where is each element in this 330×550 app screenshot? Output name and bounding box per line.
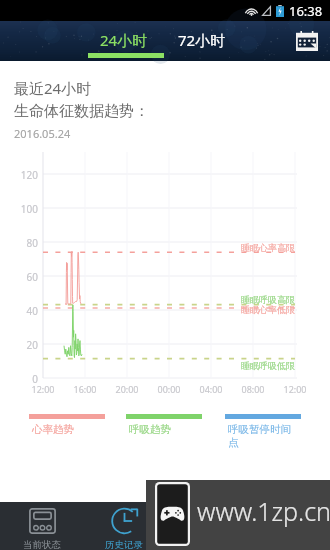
staticText: 健康报告 [165, 539, 247, 550]
staticText: 呼吸趋势 [129, 423, 171, 436]
staticText: 心率趋势 [32, 423, 74, 436]
staticText: 20 [14, 338, 38, 352]
staticText: 08:00 [237, 383, 269, 395]
button[interactable]: 24小时 [100, 30, 148, 50]
staticText: 最近24小时 [14, 78, 92, 98]
staticText: www.1zp.cn [197, 494, 330, 528]
staticText: 60 [14, 270, 38, 284]
button[interactable]: 当前状态 [2, 502, 84, 550]
staticText: 20:00 [111, 383, 143, 395]
staticText: 历史记录 [83, 539, 165, 550]
staticText: 120 [14, 168, 38, 182]
button[interactable]: 呼吸趋势 [126, 414, 202, 436]
staticText: 04:00 [195, 383, 227, 395]
staticText: 睡眠呼吸低限 [241, 360, 295, 371]
staticText: 2016.05.24 [14, 126, 71, 141]
staticText: 0 [14, 372, 38, 386]
button[interactable]: 个人设置 [248, 502, 330, 550]
staticText: 生命体征数据趋势： [14, 102, 149, 121]
button[interactable]: 呼吸暂停时间 点 [225, 414, 301, 449]
staticText: 呼吸暂停时间 点 [228, 423, 291, 449]
staticText: 100 [14, 202, 38, 216]
button[interactable]: 72小时 [178, 30, 226, 50]
staticText: 12:00 [279, 383, 311, 395]
staticText: 12:00 [27, 383, 59, 395]
button[interactable]: 心率趋势 [29, 414, 105, 436]
staticText: 40 [14, 304, 38, 318]
staticText: 当前状态 [1, 539, 83, 550]
staticText: 16:00 [69, 383, 101, 395]
staticText: 80 [14, 236, 38, 250]
staticText: 睡眠心率高限 [241, 242, 295, 253]
staticText: 16:38 [289, 2, 323, 20]
button[interactable]: Pick date [294, 28, 320, 53]
staticText: 00:00 [153, 383, 185, 395]
staticText: 睡眠呼吸高限 [241, 294, 295, 305]
staticText: 睡眠心率低限 [241, 304, 295, 315]
button[interactable]: 健康报告 [166, 502, 248, 550]
button[interactable]: 历史记录 [84, 502, 166, 550]
